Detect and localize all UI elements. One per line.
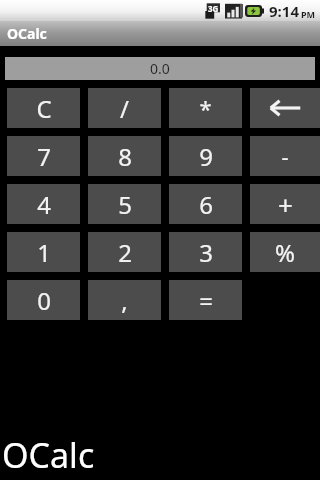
staticText: =: [199, 284, 213, 317]
button[interactable]: *: [169, 88, 242, 128]
staticText: /: [120, 92, 129, 125]
button[interactable]: =: [169, 280, 242, 320]
staticText: -: [281, 141, 289, 171]
staticText: +: [278, 187, 293, 222]
staticText: 5: [118, 188, 132, 221]
staticText: %: [275, 236, 295, 269]
staticText: 0: [37, 284, 51, 317]
button[interactable]: 1: [7, 232, 80, 272]
button[interactable]: -: [250, 136, 320, 176]
staticText: 1: [37, 236, 51, 269]
staticText: 3: [199, 236, 213, 269]
button[interactable]: 9: [169, 136, 242, 176]
button[interactable]: +: [250, 184, 320, 224]
button[interactable]: ,: [88, 280, 161, 320]
staticText: 0.0: [150, 59, 170, 78]
staticText: OCalc: [2, 432, 95, 478]
staticText: 3G: [208, 3, 219, 14]
staticText: 6: [199, 188, 213, 221]
button[interactable]: %: [250, 232, 320, 272]
button[interactable]: 2: [88, 232, 161, 272]
staticText: 8: [118, 140, 132, 173]
staticText: 9: [199, 140, 213, 173]
button[interactable]: C: [7, 88, 80, 128]
button[interactable]: Backspace: [250, 88, 320, 128]
button[interactable]: 5: [88, 184, 161, 224]
button[interactable]: 0: [7, 280, 80, 320]
button[interactable]: 8: [88, 136, 161, 176]
staticText: 2: [118, 236, 132, 269]
staticText: PM: [301, 8, 316, 20]
staticText: C: [36, 92, 52, 125]
button[interactable]: /: [88, 88, 161, 128]
staticText: 7: [37, 140, 51, 173]
staticText: 9:14: [269, 1, 299, 21]
staticText: 4: [37, 188, 51, 221]
button[interactable]: 4: [7, 184, 80, 224]
staticText: ,: [121, 284, 128, 317]
staticText: OCalc: [7, 24, 47, 43]
staticText: *: [199, 93, 212, 123]
button[interactable]: 6: [169, 184, 242, 224]
button[interactable]: 7: [7, 136, 80, 176]
button[interactable]: 3: [169, 232, 242, 272]
